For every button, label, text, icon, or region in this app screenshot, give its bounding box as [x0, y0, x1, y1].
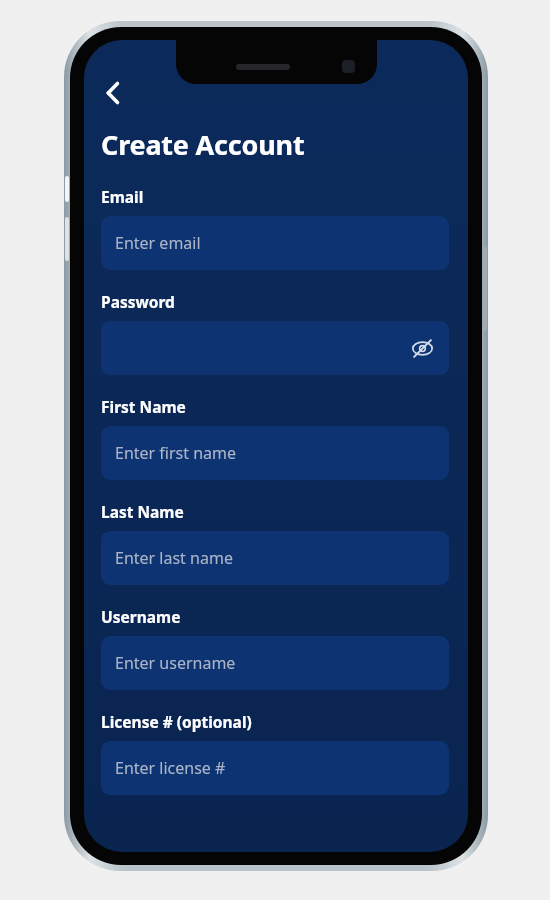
button[interactable]: Enter license #	[101, 741, 449, 795]
staticText: Enter first name	[115, 442, 237, 464]
staticText: Enter username	[115, 652, 236, 674]
staticText: Email	[101, 186, 144, 207]
staticText: Create Account	[101, 126, 305, 163]
button[interactable]: Show password	[409, 335, 435, 361]
staticText: Enter email	[115, 232, 201, 254]
staticText: First Name	[101, 396, 186, 417]
staticText: Last Name	[101, 501, 184, 522]
staticText: Enter last name	[115, 547, 233, 569]
button[interactable]: Show password	[101, 321, 449, 375]
button[interactable]: Enter email	[101, 216, 449, 270]
button[interactable]: Enter last name	[101, 531, 449, 585]
staticText: Password	[101, 291, 175, 312]
button[interactable]: Enter username	[101, 636, 449, 690]
staticText: License # (optional)	[101, 711, 252, 732]
button[interactable]: Back	[90, 70, 136, 116]
button[interactable]: Enter first name	[101, 426, 449, 480]
staticText: Enter license #	[115, 757, 226, 779]
staticText: Username	[101, 606, 181, 627]
